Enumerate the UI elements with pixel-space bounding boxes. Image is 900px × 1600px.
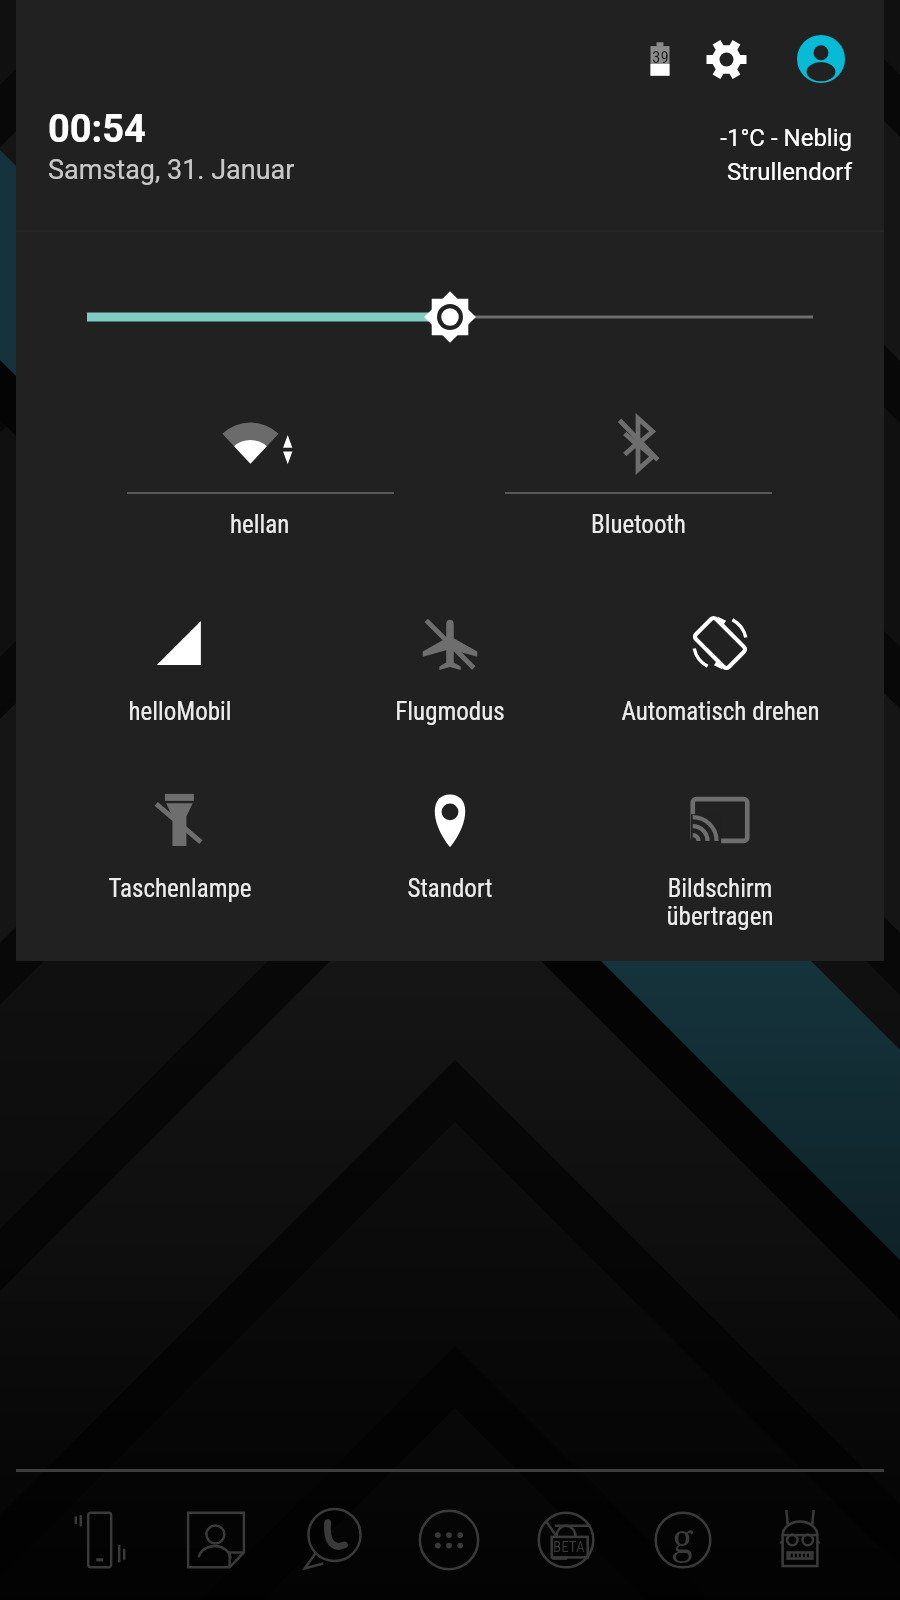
staticText: Flugmodus bbox=[395, 697, 505, 726]
staticText: Taschenlampe bbox=[108, 874, 252, 903]
staticText: 39 bbox=[652, 47, 669, 67]
button[interactable]: Bluetooth bbox=[449, 370, 827, 545]
staticText: Bildschirm übertragen bbox=[666, 874, 774, 931]
staticText: Automatisch drehen bbox=[621, 697, 820, 726]
button[interactable]: Bildschirm übertragen bbox=[585, 774, 855, 949]
staticText: Samstag, 31. Januar bbox=[48, 154, 295, 186]
button[interactable]: Flugmodus bbox=[315, 597, 585, 772]
staticText: hellan bbox=[230, 510, 290, 539]
staticText: BETA bbox=[553, 1538, 585, 1556]
button[interactable]: Standort bbox=[315, 774, 585, 949]
button[interactable]: Automatisch drehen bbox=[585, 597, 855, 772]
staticText: Bluetooth bbox=[591, 510, 686, 539]
staticText: Standort bbox=[407, 874, 493, 903]
button[interactable]: Settings bbox=[690, 23, 762, 95]
button[interactable]: Contacts bbox=[158, 1498, 274, 1582]
button[interactable]: Messages bbox=[274, 1498, 390, 1582]
button[interactable]: hellan bbox=[71, 370, 449, 545]
button[interactable]: Google Search bbox=[624, 1498, 741, 1582]
staticText: Strullendorf bbox=[727, 158, 852, 186]
button[interactable]: User profile bbox=[785, 23, 857, 95]
button[interactable]: Assistant bbox=[741, 1498, 858, 1582]
button[interactable]: Taschenlampe bbox=[45, 774, 315, 949]
button[interactable]: Battery 39 percent bbox=[624, 23, 696, 95]
staticText: g bbox=[672, 1510, 694, 1564]
button[interactable]: helloMobil bbox=[45, 597, 315, 772]
staticText: -1°C - Neblig bbox=[720, 124, 852, 152]
button[interactable]: Apps bbox=[390, 1498, 507, 1582]
staticText: 00:54 bbox=[48, 107, 146, 152]
staticText: helloMobil bbox=[128, 697, 232, 726]
button[interactable]: Brightness bbox=[16, 232, 884, 370]
button[interactable]: Phone settings bbox=[42, 1498, 158, 1582]
button[interactable]: Browser bbox=[507, 1498, 624, 1582]
